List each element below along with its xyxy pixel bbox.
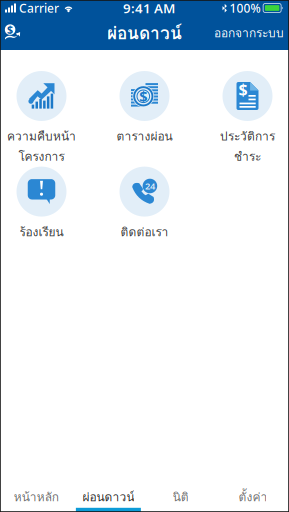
staticText: ความคืบหน้า: [7, 127, 76, 146]
staticText: Carrier: [19, 0, 59, 16]
staticText: ผ่อนดาวน์: [107, 20, 182, 46]
button[interactable]: ออกจากระบบ: [209, 18, 289, 48]
staticText: 24: [145, 180, 155, 192]
staticText: $: [139, 86, 147, 106]
staticText: ชำระ: [234, 147, 261, 166]
staticText: ออกจากระบบ: [214, 24, 284, 42]
button[interactable]: ความคืบหน้า: [0, 71, 93, 167]
staticText: $: [239, 79, 248, 100]
staticText: 9:41 AM: [123, 0, 175, 17]
staticText: นิติ: [173, 488, 189, 506]
button[interactable]: ตั้งค่า: [217, 474, 289, 512]
button[interactable]: ผ่อนดาวน์: [72, 474, 144, 512]
button[interactable]: $: [93, 71, 196, 167]
staticText: ผ่อนดาวน์: [82, 488, 134, 506]
button[interactable]: $: [196, 71, 289, 167]
button[interactable]: Home: [0, 18, 25, 47]
staticText: ตั้งค่า: [238, 488, 267, 506]
staticText: ประวัติการ: [220, 127, 275, 146]
staticText: โครงการ: [18, 147, 64, 166]
button[interactable]: หน้าหลัก: [0, 474, 72, 512]
staticText: ร้องเรียน: [19, 223, 63, 241]
staticText: $: [7, 22, 13, 36]
button[interactable]: ร้องเรียน: [0, 167, 93, 262]
staticText: ติดต่อเรา: [120, 223, 168, 241]
button[interactable]: นิติ: [144, 474, 217, 512]
button[interactable]: 24: [93, 167, 196, 262]
staticText: 100%: [229, 0, 260, 16]
staticText: หน้าหลัก: [14, 488, 59, 506]
staticText: ตารางผ่อน: [116, 127, 172, 146]
